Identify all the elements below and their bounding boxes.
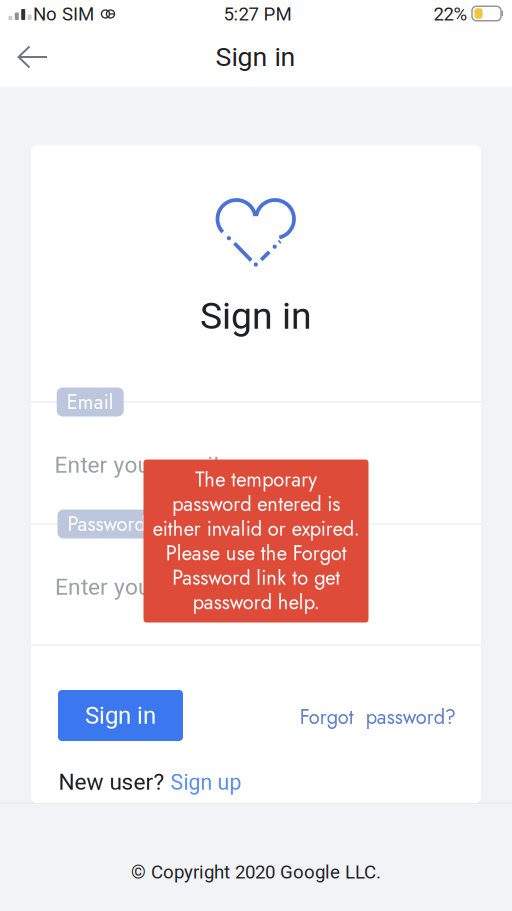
staticText: New user? [59,769,165,795]
staticText: 5:27 PM [223,3,291,25]
staticText: Enter your password [55,574,263,600]
staticText: Forgot password? [300,702,456,731]
staticText: The temporary password entered is either… [152,467,359,615]
button[interactable]: Forgot password? [290,697,465,737]
button[interactable]: Sign in [58,690,183,741]
staticText: No SIM [33,3,94,25]
staticText: Password [67,509,145,538]
staticText: Sign in [85,701,156,729]
staticText: 22% [433,3,467,25]
staticText: Sign in [215,41,295,73]
staticText: Sign in [200,294,312,338]
staticText: Email [67,387,114,416]
staticText: Sign up [171,770,242,795]
button[interactable]: Back [3,31,63,83]
staticText: Enter your email [54,452,219,478]
staticText: © Copyright 2020 Google LLC. [131,861,381,883]
button[interactable]: Sign up [171,770,242,795]
